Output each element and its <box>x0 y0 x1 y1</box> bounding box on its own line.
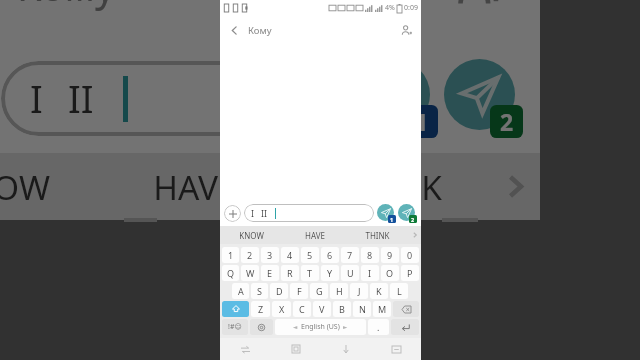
button[interactable]: Switch keyboard <box>220 338 271 360</box>
staticText: 6 <box>327 249 333 261</box>
button[interactable]: Add recipient <box>415 0 540 44</box>
button[interactable]: M <box>373 301 391 317</box>
button[interactable]: W <box>241 265 259 281</box>
button[interactable]: Shift <box>222 301 249 317</box>
button[interactable]: KNOW <box>220 226 283 244</box>
button[interactable]: 9 <box>381 247 399 263</box>
button[interactable]: Q <box>222 265 239 281</box>
staticText: KNOW <box>239 230 264 241</box>
staticText: I <box>368 267 372 279</box>
staticText: L <box>397 285 402 297</box>
button[interactable]: HAVE <box>283 226 346 244</box>
button[interactable]: THINK <box>293 153 490 220</box>
staticText: X <box>279 303 285 315</box>
staticText: H <box>336 285 343 297</box>
button[interactable]: 6 <box>321 247 339 263</box>
button[interactable]: C <box>293 301 311 317</box>
button[interactable]: K <box>370 283 388 299</box>
staticText: Кому <box>17 0 116 13</box>
button[interactable]: Send 2 <box>398 204 417 223</box>
staticText: 1 <box>415 106 429 137</box>
staticText: W <box>246 267 255 279</box>
button[interactable]: N <box>353 301 371 317</box>
button[interactable]: 5 <box>301 247 319 263</box>
button[interactable]: 1 <box>222 247 239 263</box>
button[interactable]: More suggestions <box>409 226 421 244</box>
button[interactable]: Back <box>220 16 248 44</box>
button[interactable]: Send 2 <box>444 59 523 138</box>
button[interactable]: Backspace <box>393 301 419 317</box>
staticText: G <box>316 285 323 297</box>
button[interactable]: 7 <box>341 247 359 263</box>
button[interactable]: H <box>330 283 348 299</box>
button[interactable]: HAVE <box>96 153 293 220</box>
staticText: II <box>68 73 94 124</box>
button[interactable]: Send 1 <box>359 59 438 138</box>
button[interactable]: KNOW <box>0 153 96 220</box>
button[interactable]: V <box>313 301 331 317</box>
button[interactable]: B <box>333 301 351 317</box>
button[interactable]: Settings <box>250 319 273 335</box>
staticText: ► <box>343 324 348 330</box>
button[interactable]: 2 <box>241 247 259 263</box>
staticText: I <box>251 207 255 219</box>
button[interactable]: Recents <box>271 338 321 360</box>
button[interactable]: Enter <box>391 319 419 335</box>
button[interactable]: I <box>244 204 374 222</box>
button[interactable]: More suggestions <box>490 153 540 220</box>
button[interactable]: Add recipient <box>391 16 421 44</box>
button[interactable]: Y <box>321 265 339 281</box>
button[interactable]: F <box>290 283 308 299</box>
staticText: E <box>267 267 273 279</box>
button[interactable]: Hide keyboard <box>321 338 371 360</box>
button[interactable]: U <box>341 265 359 281</box>
button[interactable]: Add attachment <box>224 205 241 222</box>
staticText: K <box>376 285 382 297</box>
button[interactable]: E <box>261 265 279 281</box>
button[interactable]: T <box>301 265 319 281</box>
button[interactable]: ◄ <box>275 319 366 335</box>
staticText: 9 <box>387 249 393 261</box>
button[interactable]: O <box>381 265 399 281</box>
button[interactable]: R <box>281 265 299 281</box>
staticText: M <box>378 303 387 315</box>
staticText: 1 <box>228 249 234 261</box>
staticText: 2 <box>247 249 253 261</box>
button[interactable]: 0 <box>401 247 419 263</box>
staticText: HAVE <box>305 230 325 241</box>
button[interactable]: Symbols <box>222 319 248 335</box>
staticText: Кому <box>248 24 272 37</box>
staticText: II <box>261 207 268 219</box>
button[interactable]: THINK <box>346 226 409 244</box>
staticText: KNOW <box>0 164 50 210</box>
button[interactable]: S <box>251 283 268 299</box>
staticText: A <box>238 285 244 297</box>
button[interactable]: L <box>390 283 408 299</box>
staticText: THINK <box>341 164 442 210</box>
button[interactable]: J <box>350 283 368 299</box>
button[interactable]: D <box>270 283 288 299</box>
staticText: 2 <box>411 216 415 223</box>
button[interactable]: A <box>232 283 249 299</box>
staticText: Y <box>327 267 333 279</box>
staticText: S <box>257 285 262 297</box>
staticText: 3 <box>267 249 273 261</box>
button[interactable]: Z <box>251 301 270 317</box>
button[interactable]: I <box>1 61 346 136</box>
button[interactable]: G <box>310 283 328 299</box>
button[interactable]: 4 <box>281 247 299 263</box>
button[interactable]: Screenshot <box>371 338 421 360</box>
button[interactable]: . <box>368 319 389 335</box>
button[interactable]: 8 <box>361 247 379 263</box>
button[interactable]: P <box>401 265 419 281</box>
button[interactable]: I <box>361 265 379 281</box>
staticText: R <box>287 267 293 279</box>
staticText: Z <box>258 303 264 315</box>
button[interactable]: Send 1 <box>377 204 396 223</box>
button[interactable]: 3 <box>261 247 279 263</box>
staticText: P <box>407 267 413 279</box>
staticText: ◄ <box>293 324 298 330</box>
button[interactable]: X <box>272 301 291 317</box>
staticText: I <box>30 73 43 124</box>
